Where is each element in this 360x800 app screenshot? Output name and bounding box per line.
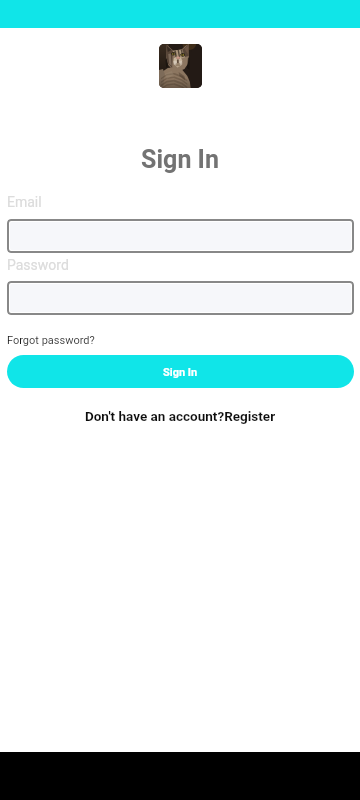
staticText: Password <box>7 257 69 273</box>
staticText: Email <box>7 194 42 210</box>
staticText: Sign In <box>0 145 360 174</box>
other: App logo <box>159 44 202 88</box>
button[interactable]: Don't have an account?Register <box>0 408 360 424</box>
button[interactable]: Email input <box>7 219 354 253</box>
button[interactable]: Forgot password? <box>7 334 95 347</box>
button[interactable]: Sign In <box>7 355 354 388</box>
button[interactable]: Password input <box>7 281 354 315</box>
staticText: Sign In <box>163 366 198 379</box>
